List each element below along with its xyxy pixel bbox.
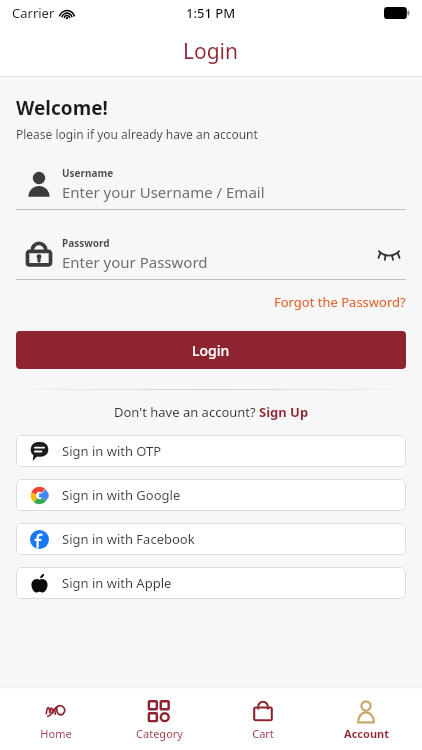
button[interactable]: Username [16, 166, 406, 210]
button[interactable]: Login [16, 331, 406, 369]
staticText: Forgot the Password? [274, 293, 406, 311]
staticText: Sign in with OTP [62, 442, 162, 460]
staticText: Login [192, 341, 230, 360]
staticText: Login [183, 37, 239, 66]
button[interactable]: Account [318, 695, 414, 745]
staticText: Category [136, 726, 183, 741]
button[interactable]: Forgot the Password? [274, 290, 406, 314]
button[interactable]: Show password [372, 237, 406, 271]
staticText: Enter your Password [62, 252, 208, 272]
staticText: Don't have an account? Sign Up [114, 403, 309, 421]
button[interactable]: Sign in with Apple [16, 567, 406, 599]
staticText: Password [62, 236, 110, 250]
button[interactable]: Don't have an account? Sign Up [114, 403, 309, 421]
staticText: Sign in with Facebook [62, 530, 195, 548]
button[interactable]: Password [16, 236, 406, 280]
staticText: Carrier [12, 4, 55, 22]
staticText: Please login if you already have an acco… [16, 126, 258, 142]
staticText: Home [40, 726, 72, 741]
button[interactable]: Home [8, 695, 104, 745]
staticText: 1:51 PM [186, 4, 236, 22]
button[interactable]: Category [111, 695, 207, 745]
staticText: Username [62, 166, 114, 180]
button[interactable]: Sign in with Facebook [16, 523, 406, 555]
button[interactable]: Cart [215, 695, 311, 745]
staticText: Account [344, 726, 389, 741]
staticText: Sign in with Apple [62, 574, 172, 592]
staticText: Enter your Username / Email [62, 182, 265, 202]
button[interactable]: Sign in with Google [16, 479, 406, 511]
staticText: Sign in with Google [62, 486, 181, 504]
staticText: Cart [252, 726, 274, 741]
button[interactable]: Sign in with OTP [16, 435, 406, 467]
staticText: Welcome! [16, 95, 108, 121]
